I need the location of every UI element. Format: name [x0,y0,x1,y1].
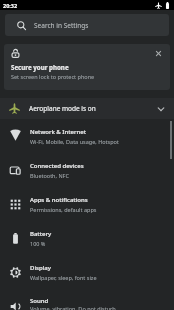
staticText: Search in Settings [34,21,89,30]
staticText: Network & Internet [30,128,87,136]
staticText: Display [30,264,51,272]
button[interactable]: Display [0,255,174,289]
staticText: 20:32 [3,2,18,9]
button[interactable]: Apps & notifications [0,187,174,221]
staticText: Volume, vibration, Do not disturb [30,305,116,310]
staticText: Wi-Fi, Mobile, Data usage, Hotspot [30,138,119,145]
staticText: 100 % [30,240,46,247]
staticText: Aeroplane mode is on [29,104,96,113]
button[interactable]: Search in Settings [5,14,169,36]
staticText: Set screen lock to protect phone [11,73,95,80]
button[interactable]: Battery [0,221,174,255]
staticText: Secure your phone [11,63,69,71]
staticText: Apps & notifications [30,196,88,204]
button[interactable]: Sound [0,289,174,310]
staticText: Wallpaper, sleep, font size [30,274,97,281]
staticText: Battery [30,230,52,238]
button[interactable]: Secure your phone [4,44,170,90]
button[interactable]: Aeroplane mode is on [0,98,174,119]
button[interactable]: Network & Internet [0,119,174,153]
staticText: Permissions, default apps [30,206,97,213]
staticText: Connected devices [30,162,84,170]
staticText: Bluetooth, NFC [30,172,69,179]
staticText: Sound [30,297,49,305]
button[interactable]: Connected devices [0,153,174,187]
